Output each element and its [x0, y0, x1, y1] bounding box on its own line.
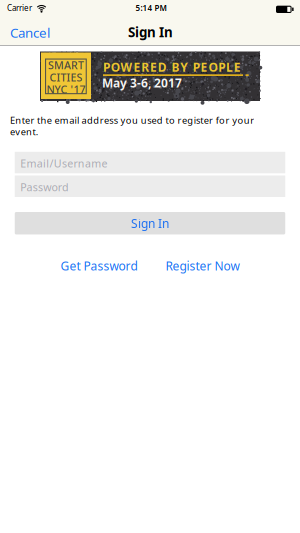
staticText: 5:14 PM [135, 3, 166, 13]
button[interactable]: Register Now [165, 258, 239, 274]
staticText: Cancel [10, 24, 50, 41]
staticText: Carrier [7, 3, 32, 13]
staticText: Sign In [131, 215, 169, 231]
staticText: SMART [48, 58, 84, 72]
staticText: Password [20, 180, 69, 194]
button[interactable]: Cancel [10, 24, 50, 41]
staticText: Get Password [60, 258, 137, 274]
staticText: Enter the email address you used to regi… [10, 114, 254, 138]
staticText: Sign In [128, 23, 173, 41]
staticText: May 3-6, 2017 [102, 75, 182, 91]
button[interactable]: Password [15, 175, 285, 197]
staticText: NYC '17 [46, 82, 85, 96]
staticText: Register Now [165, 258, 239, 274]
button[interactable]: Sign In [15, 212, 285, 234]
staticText: Email/Username [20, 156, 107, 170]
staticText: CITIES [49, 70, 82, 84]
staticText: POWERED BY PEOPLE [103, 59, 241, 75]
button[interactable]: Get Password [60, 258, 137, 274]
button[interactable]: Email/Username [15, 152, 285, 173]
